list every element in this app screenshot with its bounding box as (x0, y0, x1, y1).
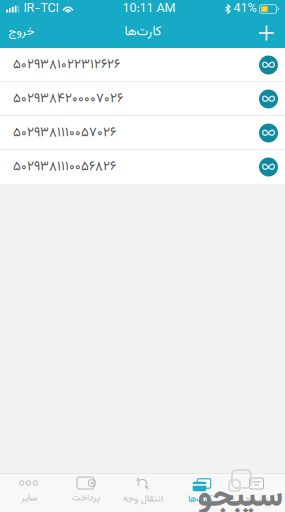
button[interactable]: ۵۰۲۹۳۸۴۲۰۰۰۰۷۰۲۶ (0, 82, 285, 116)
staticText: 10:11 AM (123, 0, 176, 19)
staticText: ۵۰۲۹۳۸۴۲۰۰۰۰۷۰۲۶ (13, 89, 123, 109)
staticText: سایر (20, 491, 36, 506)
staticText: پرداخت (71, 491, 99, 506)
button[interactable]: سایر (0, 473, 57, 512)
staticText: 41% (234, 0, 257, 19)
staticText: خروج (8, 23, 34, 41)
staticText: سپرده (245, 492, 268, 507)
button[interactable]: سپرده (228, 473, 285, 512)
button[interactable]: پرداخت (57, 473, 114, 512)
staticText: انتقال وجه (122, 492, 162, 507)
button[interactable]: ۵۰۲۹۳۸۱۱۱۰۰۵۶۸۲۶ (0, 150, 285, 184)
button[interactable]: Add card (250, 18, 283, 48)
button[interactable]: کارت‌ها (171, 473, 228, 512)
button[interactable]: انتقال وجه (114, 473, 171, 512)
staticText: ۵۰۲۹۳۸۱۰۲۲۳۱۲۶۲۶ (13, 55, 120, 75)
staticText: کارت‌ها (187, 492, 211, 507)
staticText: IR-TCI (23, 0, 58, 19)
staticText: ۵۰۲۹۳۸۱۱۱۰۰۵۶۸۲۶ (13, 157, 116, 177)
staticText: سیبجو (197, 473, 283, 512)
button[interactable]: ۵۰۲۹۳۸۱۰۲۲۳۱۲۶۲۶ (0, 48, 285, 82)
button[interactable]: خروج (2, 18, 48, 48)
staticText: ۵۰۲۹۳۸۱۱۱۰۰۵۷۰۲۶ (13, 123, 116, 143)
staticText: کارت‌ها (124, 22, 161, 42)
button[interactable]: ۵۰۲۹۳۸۱۱۱۰۰۵۷۰۲۶ (0, 116, 285, 150)
